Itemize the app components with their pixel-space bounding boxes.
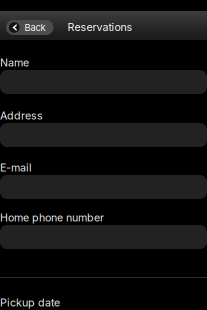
staticText: Reservations <box>67 20 132 33</box>
staticText: E-mail <box>0 161 32 174</box>
staticText: Home phone number <box>0 211 104 224</box>
staticText: Address <box>0 109 43 122</box>
staticText: Name <box>0 56 29 69</box>
staticText: Back <box>24 22 45 33</box>
staticText: Pickup date <box>0 296 60 309</box>
button[interactable]: Back <box>6 16 53 35</box>
